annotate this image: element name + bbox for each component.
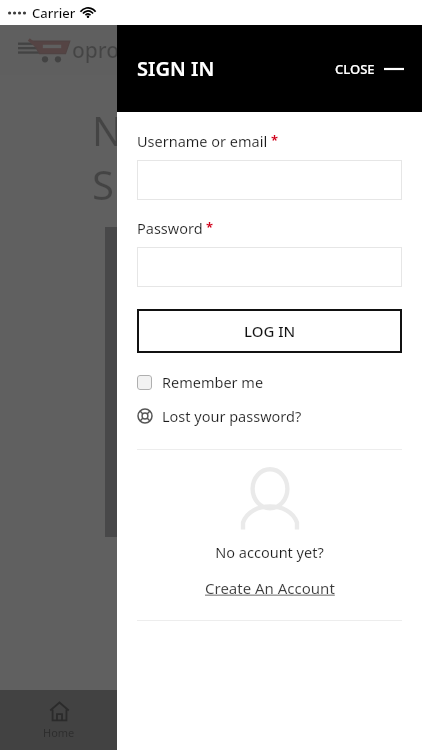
staticText: Carrier bbox=[32, 4, 76, 22]
staticText: SIGN IN bbox=[137, 55, 215, 82]
staticText: * bbox=[271, 131, 279, 149]
button[interactable]: CLOSE bbox=[319, 50, 422, 88]
button[interactable] bbox=[137, 247, 402, 287]
staticText: LOG IN bbox=[244, 321, 296, 341]
staticText: Password bbox=[137, 218, 203, 238]
staticText: N bbox=[92, 103, 123, 157]
staticText: S bbox=[92, 157, 114, 211]
button[interactable]: LOG IN bbox=[137, 309, 402, 353]
button[interactable]: Create An Account bbox=[201, 576, 339, 600]
staticText: Remember me bbox=[162, 372, 264, 392]
button[interactable] bbox=[137, 160, 402, 200]
button[interactable]: Home bbox=[33, 697, 85, 744]
button[interactable]: Remember me bbox=[137, 369, 264, 395]
staticText: Username or email bbox=[137, 131, 268, 151]
staticText: * bbox=[206, 218, 214, 236]
staticText: Lost your password? bbox=[162, 406, 302, 426]
button[interactable]: Lost your password? bbox=[137, 403, 302, 429]
staticText: Create An Account bbox=[205, 578, 335, 598]
staticText: opro bbox=[72, 36, 120, 65]
staticText: No account yet? bbox=[215, 542, 324, 562]
staticText: Home bbox=[43, 725, 75, 740]
staticText: CLOSE bbox=[335, 60, 375, 78]
